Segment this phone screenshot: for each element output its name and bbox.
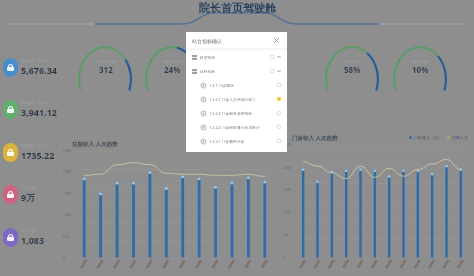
- staticText: 目标指标: [200, 69, 216, 74]
- button[interactable]: 药占比: [219, 44, 277, 84]
- button[interactable]: 医疗收入（万元）: [3, 58, 62, 77]
- staticText: 住院收入（万元）: [21, 144, 49, 148]
- staticText: 门急诊均次费: [95, 60, 116, 64]
- staticText: 1.3.2.1 门诊人次构成分析二: [209, 97, 256, 102]
- staticText: 10%: [412, 64, 429, 75]
- staticText: 医疗收入（万元）: [21, 59, 49, 63]
- staticText: 站台指标确认: [192, 38, 222, 44]
- staticText: 出院人次: [21, 229, 35, 233]
- staticText: 住院人次: [452, 135, 468, 140]
- button[interactable]: 1.3.2.4 门诊服务量分布与统计: [201, 120, 281, 134]
- button[interactable]: 门诊人次: [3, 185, 62, 204]
- staticText: 5,676.34: [21, 64, 57, 76]
- button[interactable]: 门诊收入（万元）: [3, 100, 62, 119]
- button[interactable]: 关闭: [272, 36, 281, 45]
- staticText: 1.3.3.1 门诊费用分析: [209, 139, 245, 144]
- staticText: 1735.22: [21, 149, 55, 161]
- staticText: 1,500: [63, 192, 72, 196]
- staticText: 3,941.12: [21, 106, 57, 118]
- button[interactable]: 门诊收入占比: [143, 44, 201, 84]
- button[interactable]: 1.3.2.2 门诊服务效率指标: [201, 106, 281, 120]
- staticText: 24%: [164, 64, 181, 75]
- staticText: 500: [63, 235, 69, 239]
- button[interactable]: 床位使用率: [391, 44, 449, 84]
- staticText: 2,000: [283, 166, 292, 170]
- staticText: 院长首页驾驶舱: [199, 1, 276, 15]
- staticText: 312: [99, 64, 113, 75]
- button[interactable]: 1.3.2.1 门诊人次构成分析二: [201, 92, 281, 106]
- staticText: 门诊收入（万）: [414, 135, 442, 140]
- staticText: 1.3.2.2 门诊服务效率指标: [209, 111, 253, 116]
- button[interactable]: 科室指标: [192, 50, 281, 64]
- button[interactable]: 1.3.1 门诊概况: [201, 78, 281, 92]
- staticText: 1.3.1 门诊概况: [209, 83, 234, 88]
- button[interactable]: 1.3.3.1 门诊费用分析: [201, 134, 281, 148]
- staticText: 1,000: [283, 211, 292, 215]
- staticText: 0: [63, 256, 65, 260]
- staticText: 门诊收入（万元）: [21, 101, 49, 105]
- staticText: 住院收入 人次趋势: [72, 140, 118, 148]
- staticText: 门诊收入占比: [162, 60, 183, 64]
- staticText: 9万: [21, 191, 36, 203]
- staticText: 门诊收入 人次趋势: [292, 134, 338, 142]
- button[interactable]: 耗材占比: [323, 44, 381, 84]
- button[interactable]: 住院收入（万元）: [3, 143, 62, 162]
- staticText: 科室指标: [200, 55, 216, 60]
- staticText: 1,083: [21, 234, 45, 246]
- staticText: 2,000: [63, 170, 72, 174]
- staticText: 耗材占比: [346, 60, 360, 64]
- staticText: 1.3.2.4 门诊服务量分布与统计: [209, 125, 260, 130]
- staticText: 床位使用率: [411, 60, 429, 64]
- staticText: 0: [283, 256, 285, 260]
- button[interactable]: 目标指标: [192, 64, 281, 78]
- staticText: 2,500: [283, 143, 292, 147]
- staticText: 门诊人次: [21, 186, 35, 190]
- staticText: 1,500: [283, 188, 292, 192]
- button[interactable]: 门急诊均次费: [76, 44, 134, 84]
- staticText: 1,000: [63, 213, 72, 217]
- staticText: 500: [283, 233, 289, 237]
- staticText: 2,500: [63, 149, 72, 153]
- staticText: 58%: [344, 64, 361, 75]
- button[interactable]: 出院人次: [3, 228, 62, 247]
